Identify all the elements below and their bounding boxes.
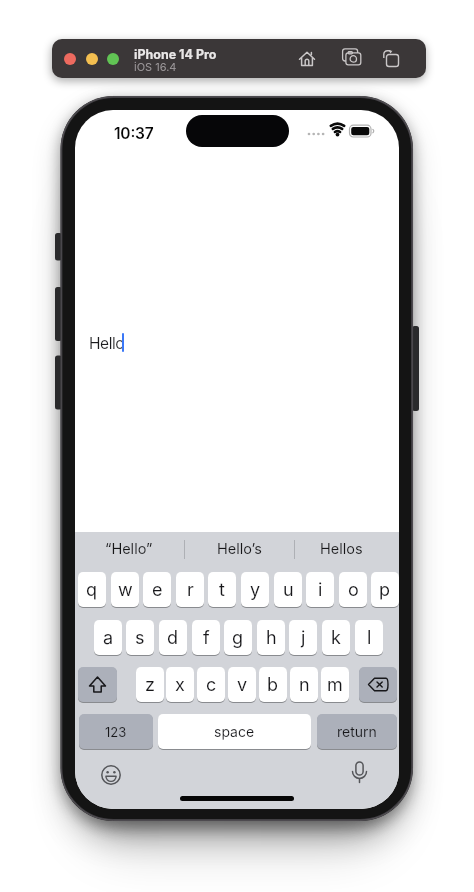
staticText: i [318,579,323,601]
staticText: Hellos [320,540,363,558]
button[interactable]: Hellos [287,534,395,564]
button[interactable]: o [339,572,367,607]
button[interactable] [359,667,397,702]
staticText: l [367,627,372,649]
button[interactable] [86,53,98,65]
button[interactable]: v [228,667,256,702]
button[interactable]: b [259,667,287,702]
button[interactable]: “Hello” [75,534,183,564]
button[interactable] [78,667,117,702]
button[interactable]: 123 [79,714,153,749]
staticText: u [283,579,294,601]
staticText: e [152,579,163,601]
button[interactable] [342,48,362,66]
staticText: f [203,627,210,649]
button[interactable]: l [355,620,383,655]
button[interactable]: space [158,714,311,749]
button[interactable] [298,50,316,68]
button[interactable]: r [176,572,204,607]
button[interactable]: p [371,572,399,607]
staticText: Hello’s [217,540,262,558]
button[interactable]: s [126,620,154,655]
button[interactable]: w [111,572,139,607]
staticText: h [266,627,277,649]
button[interactable]: c [197,667,225,702]
staticText: y [250,579,261,601]
button[interactable]: d [159,620,187,655]
button[interactable]: k [322,620,350,655]
staticText: m [327,674,343,696]
button[interactable]: h [257,620,285,655]
button[interactable]: t [208,572,236,607]
staticText: p [379,579,391,601]
button[interactable]: a [94,620,122,655]
staticText: d [167,627,179,649]
staticText: n [299,674,310,696]
staticText: space [214,723,255,740]
button[interactable]: g [224,620,252,655]
button[interactable]: x [166,667,194,702]
button[interactable]: Hello’s [185,534,293,564]
staticText: x [175,674,185,696]
staticText: z [145,674,155,696]
button[interactable] [107,53,119,65]
staticText: o [348,579,359,601]
staticText: q [86,579,98,601]
staticText: r [187,579,194,601]
staticText: 123 [105,724,127,740]
button[interactable]: return [317,714,397,749]
button[interactable]: e [143,572,171,607]
button[interactable] [349,761,370,789]
button[interactable]: q [78,572,106,607]
button[interactable]: f [192,620,220,655]
button[interactable] [64,53,76,65]
button[interactable]: j [289,620,317,655]
button[interactable]: i [306,572,334,607]
button[interactable] [101,765,121,785]
staticText: return [337,723,377,740]
button[interactable]: u [274,572,302,607]
staticText: w [118,579,133,601]
staticText: Hello [89,334,125,351]
staticText: t [219,579,225,601]
button[interactable]: y [241,572,269,607]
button[interactable]: n [290,667,318,702]
staticText: iPhone 14 Pro [134,47,217,61]
staticText: v [237,674,248,696]
staticText: k [331,627,341,649]
staticText: a [103,627,114,649]
button[interactable] [382,50,401,68]
staticText: j [301,627,306,649]
button[interactable]: z [136,667,164,702]
staticText: “Hello” [105,540,153,558]
staticText: iOS 16.4 [134,60,177,72]
button[interactable]: m [321,667,349,702]
staticText: b [267,674,279,696]
staticText: 10:37 [114,124,154,143]
staticText: s [135,627,145,649]
staticText: c [206,674,217,696]
staticText: g [232,627,244,649]
